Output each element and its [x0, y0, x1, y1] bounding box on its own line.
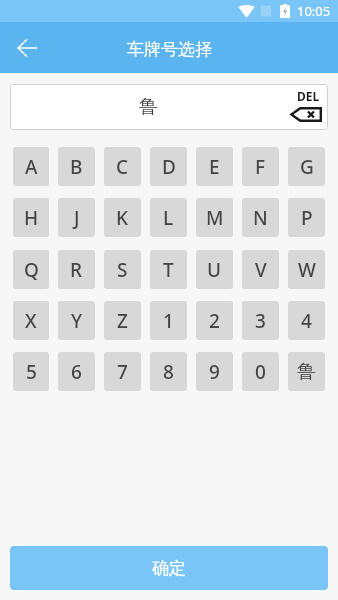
- button[interactable]: R: [58, 250, 95, 289]
- button[interactable]: X: [13, 301, 49, 340]
- button[interactable]: 9: [196, 352, 233, 391]
- button[interactable]: H: [13, 198, 49, 237]
- staticText: T: [163, 257, 174, 283]
- staticText: 7: [117, 359, 128, 385]
- staticText: 8: [163, 359, 174, 385]
- staticText: M: [206, 205, 224, 231]
- staticText: S: [117, 257, 128, 283]
- button[interactable]: 1: [150, 301, 187, 340]
- staticText: G: [300, 154, 314, 180]
- button[interactable]: 6: [58, 352, 95, 391]
- staticText: F: [255, 154, 266, 180]
- button[interactable]: Delete: [283, 84, 328, 128]
- button[interactable]: N: [242, 198, 279, 237]
- button[interactable]: A: [13, 147, 49, 186]
- button[interactable]: U: [196, 250, 233, 289]
- button[interactable]: Q: [13, 250, 49, 289]
- staticText: U: [207, 257, 222, 283]
- button[interactable]: 确定: [10, 546, 328, 590]
- button[interactable]: E: [196, 147, 233, 186]
- button[interactable]: 0: [242, 352, 279, 391]
- button[interactable]: C: [104, 147, 141, 186]
- staticText: A: [25, 154, 38, 180]
- button[interactable]: P: [288, 198, 325, 237]
- staticText: R: [70, 257, 83, 283]
- staticText: Z: [117, 308, 128, 334]
- button[interactable]: T: [150, 250, 187, 289]
- staticText: 9: [209, 359, 220, 385]
- staticText: 鲁: [139, 95, 158, 119]
- staticText: H: [24, 205, 39, 231]
- button[interactable]: G: [288, 147, 325, 186]
- button[interactable]: F: [242, 147, 279, 186]
- button[interactable]: S: [104, 250, 141, 289]
- staticText: D: [162, 154, 176, 180]
- button[interactable]: K: [104, 198, 141, 237]
- button[interactable]: 8: [150, 352, 187, 391]
- staticText: 5: [26, 359, 37, 385]
- button[interactable]: 4: [288, 301, 325, 340]
- staticText: N: [253, 205, 268, 231]
- button[interactable]: J: [58, 198, 95, 237]
- button[interactable]: V: [242, 250, 279, 289]
- staticText: DEL: [297, 88, 320, 104]
- staticText: K: [116, 205, 129, 231]
- staticText: L: [163, 205, 174, 231]
- button[interactable]: Z: [104, 301, 141, 340]
- staticText: V: [255, 257, 267, 283]
- staticText: 10:05: [297, 2, 331, 20]
- staticText: 1: [163, 308, 174, 334]
- staticText: P: [301, 205, 313, 231]
- button[interactable]: D: [150, 147, 187, 186]
- button[interactable]: 5: [13, 352, 49, 391]
- staticText: C: [116, 154, 129, 180]
- staticText: X: [25, 308, 37, 334]
- button[interactable]: M: [196, 198, 233, 237]
- button[interactable]: L: [150, 198, 187, 237]
- staticText: E: [209, 154, 220, 180]
- staticText: B: [70, 154, 83, 180]
- staticText: 6: [71, 359, 82, 385]
- staticText: Q: [24, 257, 39, 283]
- staticText: J: [74, 205, 80, 231]
- button[interactable]: W: [288, 250, 325, 289]
- staticText: W: [298, 257, 316, 283]
- staticText: 0: [255, 359, 266, 385]
- button[interactable]: Y: [58, 301, 95, 340]
- button[interactable]: B: [58, 147, 95, 186]
- staticText: 3: [255, 308, 266, 334]
- staticText: Y: [71, 308, 83, 334]
- staticText: 车牌号选择: [127, 39, 212, 60]
- button[interactable]: 3: [242, 301, 279, 340]
- staticText: 确定: [152, 558, 186, 579]
- staticText: 鲁: [297, 360, 316, 384]
- staticText: 2: [209, 308, 220, 334]
- button[interactable]: Back: [0, 22, 53, 73]
- button[interactable]: 7: [104, 352, 141, 391]
- button[interactable]: 2: [196, 301, 233, 340]
- staticText: 4: [301, 308, 312, 334]
- button[interactable]: 鲁: [288, 352, 325, 391]
